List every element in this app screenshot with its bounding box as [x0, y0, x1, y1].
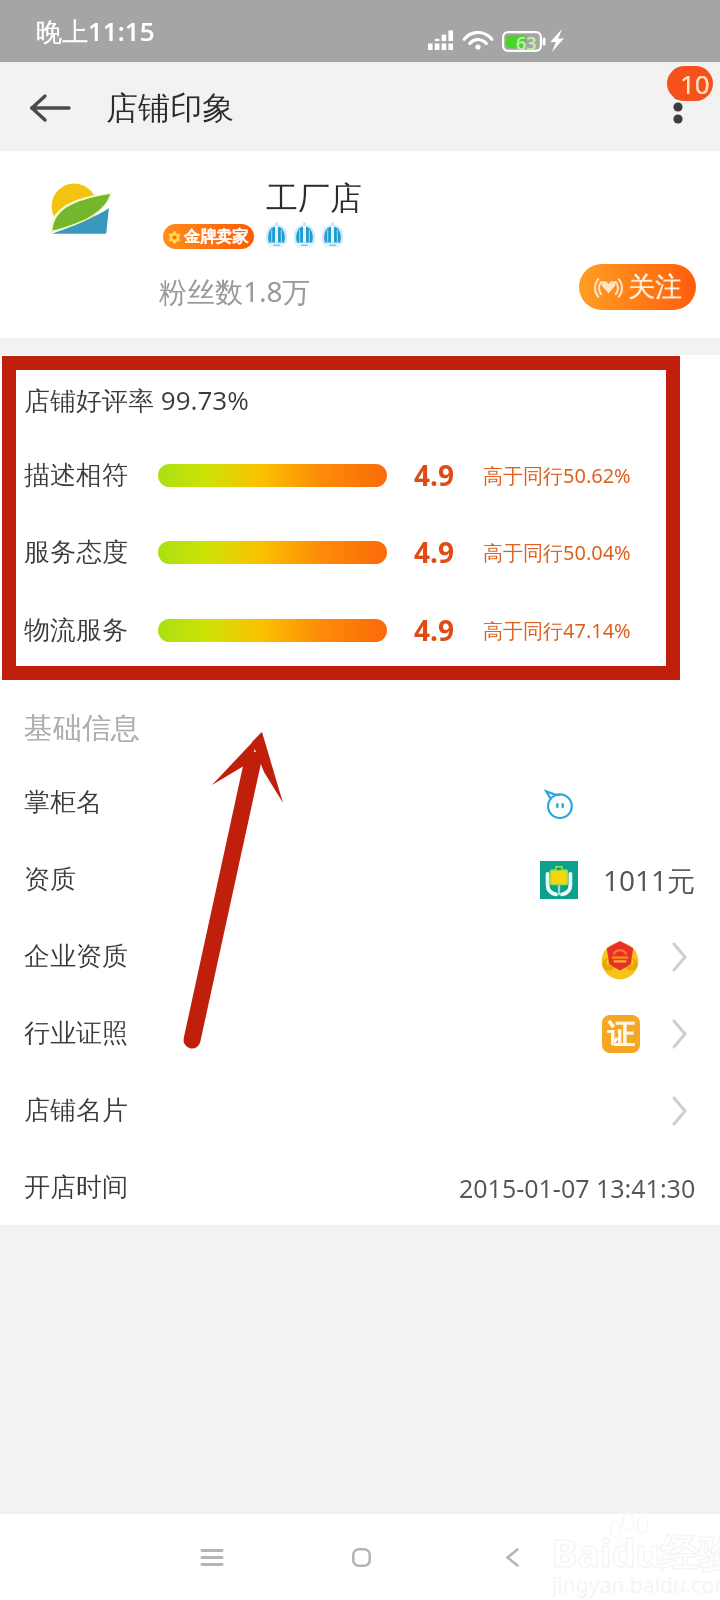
button[interactable]: Back	[469, 1514, 555, 1600]
staticText: 金牌卖家	[184, 227, 248, 247]
staticText: 店铺印象	[106, 88, 234, 128]
staticText: 高于同行47.14%	[483, 617, 631, 644]
staticText: 工厂店	[266, 178, 362, 218]
staticText: 店铺好评率 99.73%	[24, 382, 249, 418]
button[interactable]: 关注	[579, 264, 696, 310]
button[interactable]: 店铺名片	[0, 1072, 720, 1149]
staticText: 开店时间	[24, 1171, 128, 1204]
staticText: 高于同行50.62%	[483, 462, 631, 489]
staticText: 4.9	[414, 611, 454, 649]
staticText: 2015-01-07 13:41:30	[459, 1171, 696, 1205]
staticText: 关注	[628, 270, 682, 304]
staticText: 63	[516, 31, 537, 56]
staticText: Baidu经验	[552, 1526, 720, 1578]
staticText: 证	[607, 1017, 635, 1052]
button[interactable]: Back	[14, 72, 86, 144]
button[interactable]: 掌柜名	[0, 764, 720, 841]
staticText: 描述相符	[24, 459, 128, 492]
staticText: 物流服务	[24, 614, 128, 647]
staticText: 企业资质	[24, 940, 128, 973]
staticText: 掌柜名	[24, 786, 102, 819]
staticText: 行业证照	[24, 1017, 128, 1050]
staticText: 粉丝数1.8万	[159, 272, 311, 310]
staticText: 服务态度	[24, 536, 128, 569]
button[interactable]: Recent apps	[169, 1514, 255, 1600]
staticText: 10	[680, 66, 710, 101]
staticText: jingyan.baidu.com	[552, 1571, 720, 1600]
staticText: 晚上11:15	[36, 13, 155, 49]
button[interactable]: Notifications	[667, 66, 713, 101]
staticText: 4.9	[414, 456, 454, 494]
staticText: 4.9	[414, 533, 454, 571]
staticText: 资质	[24, 863, 76, 896]
staticText: 高于同行50.04%	[483, 539, 631, 566]
button[interactable]: 行业证照	[0, 995, 720, 1072]
button[interactable]: More options	[650, 80, 706, 136]
button[interactable]: 资质	[0, 841, 720, 918]
button[interactable]: 企业资质	[0, 918, 720, 995]
staticText: 1011元	[603, 861, 696, 899]
button[interactable]: Home	[318, 1514, 404, 1600]
staticText: 店铺名片	[24, 1094, 128, 1127]
button[interactable]: 开店时间	[0, 1149, 720, 1226]
staticText: 基础信息	[24, 710, 140, 747]
